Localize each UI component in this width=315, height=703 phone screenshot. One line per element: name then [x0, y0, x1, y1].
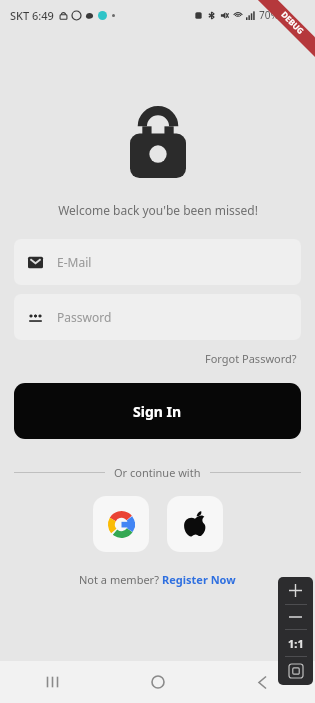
button[interactable]: Sign in with Google — [93, 496, 149, 552]
staticText: Sign In — [133, 402, 182, 421]
staticText: DEBUG — [279, 9, 307, 36]
staticText: 70% — [259, 8, 279, 22]
button[interactable]: Sign In — [14, 383, 301, 439]
button[interactable]: E-Mail — [14, 239, 301, 285]
staticText: Welcome back you'be been missed! — [58, 202, 258, 218]
button[interactable]: Zoom out — [278, 605, 313, 629]
staticText: Or continue with — [114, 465, 201, 480]
staticText: Password — [57, 309, 112, 325]
button[interactable]: Screenshot — [278, 657, 313, 685]
button[interactable]: 1:1 — [278, 630, 313, 656]
staticText: SKT 6:49 — [10, 8, 54, 23]
button[interactable]: Back — [210, 661, 315, 703]
button[interactable]: Not a member? — [75, 570, 240, 589]
button[interactable]: Zoom in — [278, 577, 313, 604]
staticText: E-Mail — [57, 254, 92, 270]
staticText: Register Now — [162, 572, 236, 587]
button[interactable]: Recents — [0, 661, 105, 703]
button[interactable]: Forgot Password? — [201, 349, 301, 368]
button[interactable]: Password — [14, 294, 301, 340]
staticText: Forgot Password? — [205, 351, 297, 366]
button[interactable]: Sign in with Apple — [167, 496, 223, 552]
staticText: Not a member? — [79, 572, 162, 587]
staticText: 1:1 — [288, 636, 304, 651]
button[interactable]: Home — [105, 661, 210, 703]
